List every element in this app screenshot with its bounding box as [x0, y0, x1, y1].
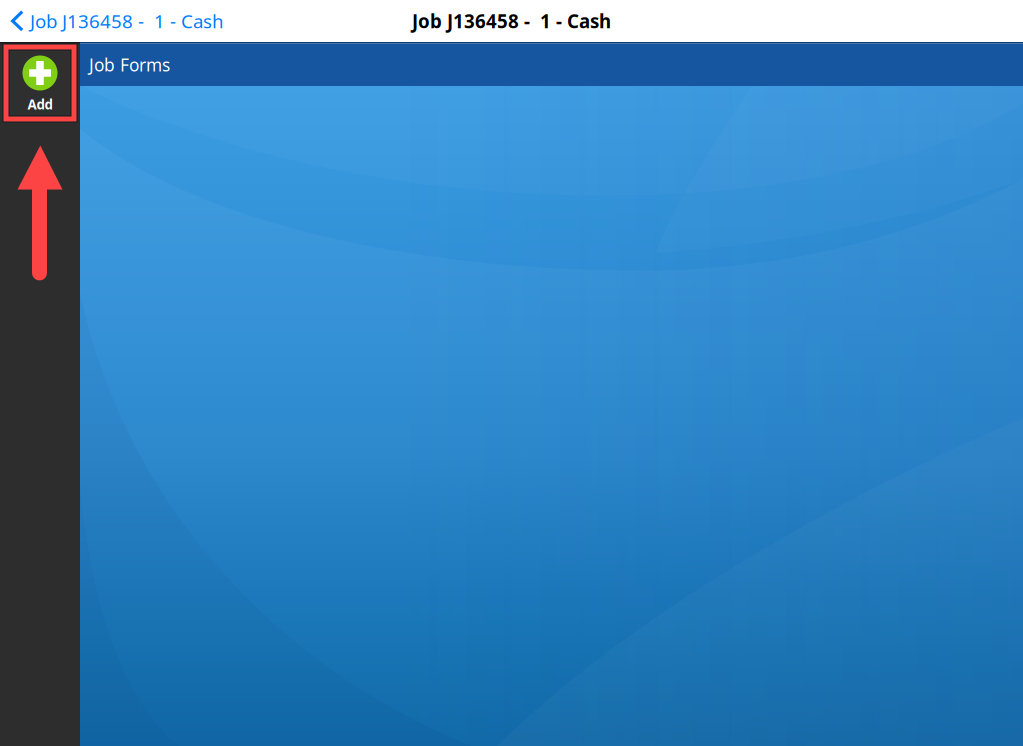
- staticText: Add: [27, 95, 52, 113]
- staticText: Job Forms: [89, 53, 170, 76]
- button[interactable]: Job J136458 - 1 - Cash: [0, 0, 224, 41]
- staticText: Job J136458 - 1 - Cash: [412, 9, 611, 33]
- button[interactable]: Add: [2, 43, 77, 122]
- staticText: Job J136458 - 1 - Cash: [30, 9, 224, 33]
